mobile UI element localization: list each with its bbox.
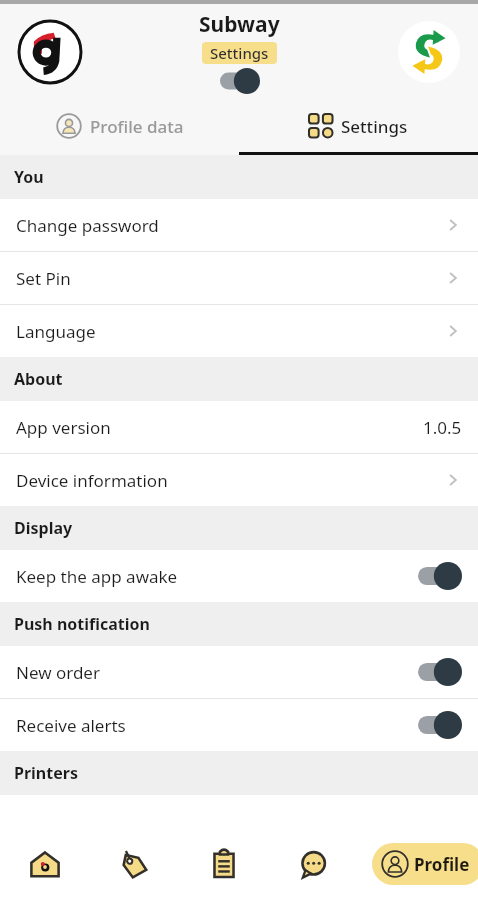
staticText: New order xyxy=(16,661,418,684)
button[interactable]: Set Pin xyxy=(0,252,478,304)
button[interactable]: App logo xyxy=(16,18,84,86)
button[interactable]: Orders xyxy=(179,828,268,900)
button[interactable]: Change password xyxy=(0,199,478,251)
button[interactable]: Home xyxy=(0,828,90,900)
staticText: About xyxy=(14,368,63,390)
staticText: Settings xyxy=(341,115,408,138)
button[interactable]: New order xyxy=(0,646,478,698)
button[interactable]: Settings xyxy=(239,100,478,152)
staticText: 1.0.5 xyxy=(423,416,462,439)
staticText: Keep the app awake xyxy=(16,565,418,588)
staticText: Change password xyxy=(16,214,444,237)
button[interactable]: Profile xyxy=(372,843,478,885)
staticText: Set Pin xyxy=(16,267,444,290)
staticText: App version xyxy=(16,416,423,439)
staticText: Push notification xyxy=(14,613,150,635)
button[interactable]: Subway xyxy=(398,21,460,83)
button[interactable]: Offers xyxy=(90,828,179,900)
staticText: Profile xyxy=(414,853,470,876)
button[interactable]: App version xyxy=(0,401,478,453)
staticText: You xyxy=(14,166,44,188)
button[interactable]: Language xyxy=(0,305,478,357)
staticText: Profile data xyxy=(90,115,184,138)
staticText: Language xyxy=(16,320,444,343)
staticText: Receive alerts xyxy=(16,714,418,737)
staticText: Device information xyxy=(16,469,444,492)
staticText: Settings xyxy=(210,43,269,63)
button[interactable]: Keep the app awake xyxy=(0,550,478,602)
staticText: Display xyxy=(14,517,73,539)
button[interactable]: Profile data xyxy=(0,100,239,152)
staticText: Printers xyxy=(14,762,78,784)
staticText: Subway xyxy=(199,10,280,39)
button[interactable]: Device information xyxy=(0,454,478,506)
button[interactable]: Messages xyxy=(268,828,357,900)
button[interactable]: Receive alerts xyxy=(0,699,478,751)
button[interactable]: Subway xyxy=(199,10,280,94)
